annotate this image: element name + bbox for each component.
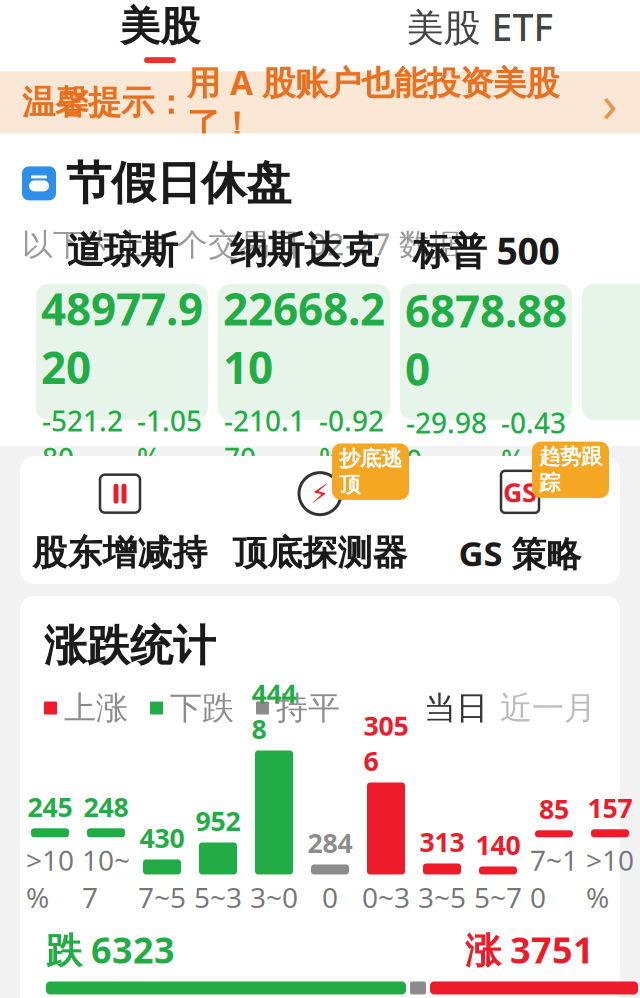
staticText: 140 xyxy=(475,827,520,862)
button[interactable]: 纳斯达克 xyxy=(218,284,390,420)
staticText: ⚡︎ xyxy=(310,478,329,509)
staticText: 美股 xyxy=(120,2,200,51)
button[interactable]: GS xyxy=(420,456,620,584)
staticText: >10% xyxy=(586,841,634,916)
staticText: 5~3 xyxy=(194,878,242,916)
staticText: 157 xyxy=(587,790,632,825)
staticText: 48977.920 xyxy=(41,279,203,396)
staticText: 3056 xyxy=(363,708,408,778)
staticText: 温馨提示： xyxy=(22,82,187,123)
button[interactable]: 标普 500 xyxy=(400,284,572,420)
staticText: 涨跌统计 xyxy=(44,620,216,672)
staticText: -210.170 xyxy=(224,402,305,476)
staticText: 顶底探测器 xyxy=(232,532,407,574)
staticText: 284 xyxy=(307,825,352,860)
staticText: 10~7 xyxy=(82,841,130,916)
staticText: 0~3 xyxy=(362,878,410,916)
staticText: 美股 ETF xyxy=(406,2,553,51)
staticText: 245 xyxy=(27,789,72,824)
staticText: 用 A 股账户也能投资美股了！ xyxy=(187,60,559,145)
staticText: 22668.210 xyxy=(223,279,385,396)
staticText: -0.92% xyxy=(319,402,384,476)
button[interactable]: 美股 ETF xyxy=(320,0,640,71)
staticText: 抄底逃顶 xyxy=(339,445,402,498)
button[interactable]: 当日 xyxy=(424,688,488,728)
staticText: 涨 3751 xyxy=(465,926,594,973)
button[interactable]: ⚡︎ xyxy=(220,456,420,584)
button[interactable]: 近一月 xyxy=(500,688,596,728)
staticText: 3~0 xyxy=(250,878,298,916)
staticText: 5~7 xyxy=(474,878,522,916)
staticText: 以下为上一个交易日 02-27 数据 xyxy=(22,223,461,264)
staticText: 近一月 xyxy=(500,688,596,728)
staticText: 当日 xyxy=(424,688,488,728)
staticText: 248 xyxy=(83,789,128,824)
button[interactable]: 道琼斯 xyxy=(36,284,208,420)
staticText: › xyxy=(602,69,618,136)
staticText: 持平 xyxy=(276,688,340,728)
staticText: 纳斯达克 xyxy=(230,227,378,273)
button[interactable]: 温馨提示： xyxy=(0,71,640,133)
staticText: 952 xyxy=(195,803,240,838)
staticText: 道琼斯 xyxy=(66,227,177,273)
staticText: -521.280 xyxy=(42,402,123,476)
staticText: 7~5 xyxy=(138,878,186,916)
staticText: 7~10 xyxy=(530,841,578,916)
staticText: -29.980 xyxy=(406,404,487,478)
staticText: 3~5 xyxy=(418,878,466,916)
staticText: 下跌 xyxy=(170,688,234,728)
staticText: 85 xyxy=(539,791,569,826)
staticText: 430 xyxy=(139,820,184,855)
staticText: 313 xyxy=(419,824,464,859)
staticText: 跌 6323 xyxy=(46,926,175,973)
staticText: 标普 500 xyxy=(412,225,559,275)
button[interactable]: 美股 xyxy=(0,0,320,71)
staticText: 股东增减持 xyxy=(32,532,207,574)
staticText: GS 策略 xyxy=(458,530,581,576)
button[interactable]: 股东增减持 xyxy=(20,456,220,584)
staticText: 趋势跟踪 xyxy=(539,444,602,496)
staticText: 6878.880 xyxy=(405,281,567,398)
staticText: 上涨 xyxy=(64,688,128,728)
staticText: -0.43% xyxy=(501,404,566,478)
staticText: >10% xyxy=(26,841,74,916)
staticText: -1.05% xyxy=(137,402,202,476)
staticText: 0 xyxy=(322,878,338,916)
staticText: 节假日休盘 xyxy=(66,155,291,211)
staticText: GS xyxy=(503,474,537,509)
staticText: 4448 xyxy=(251,676,296,746)
